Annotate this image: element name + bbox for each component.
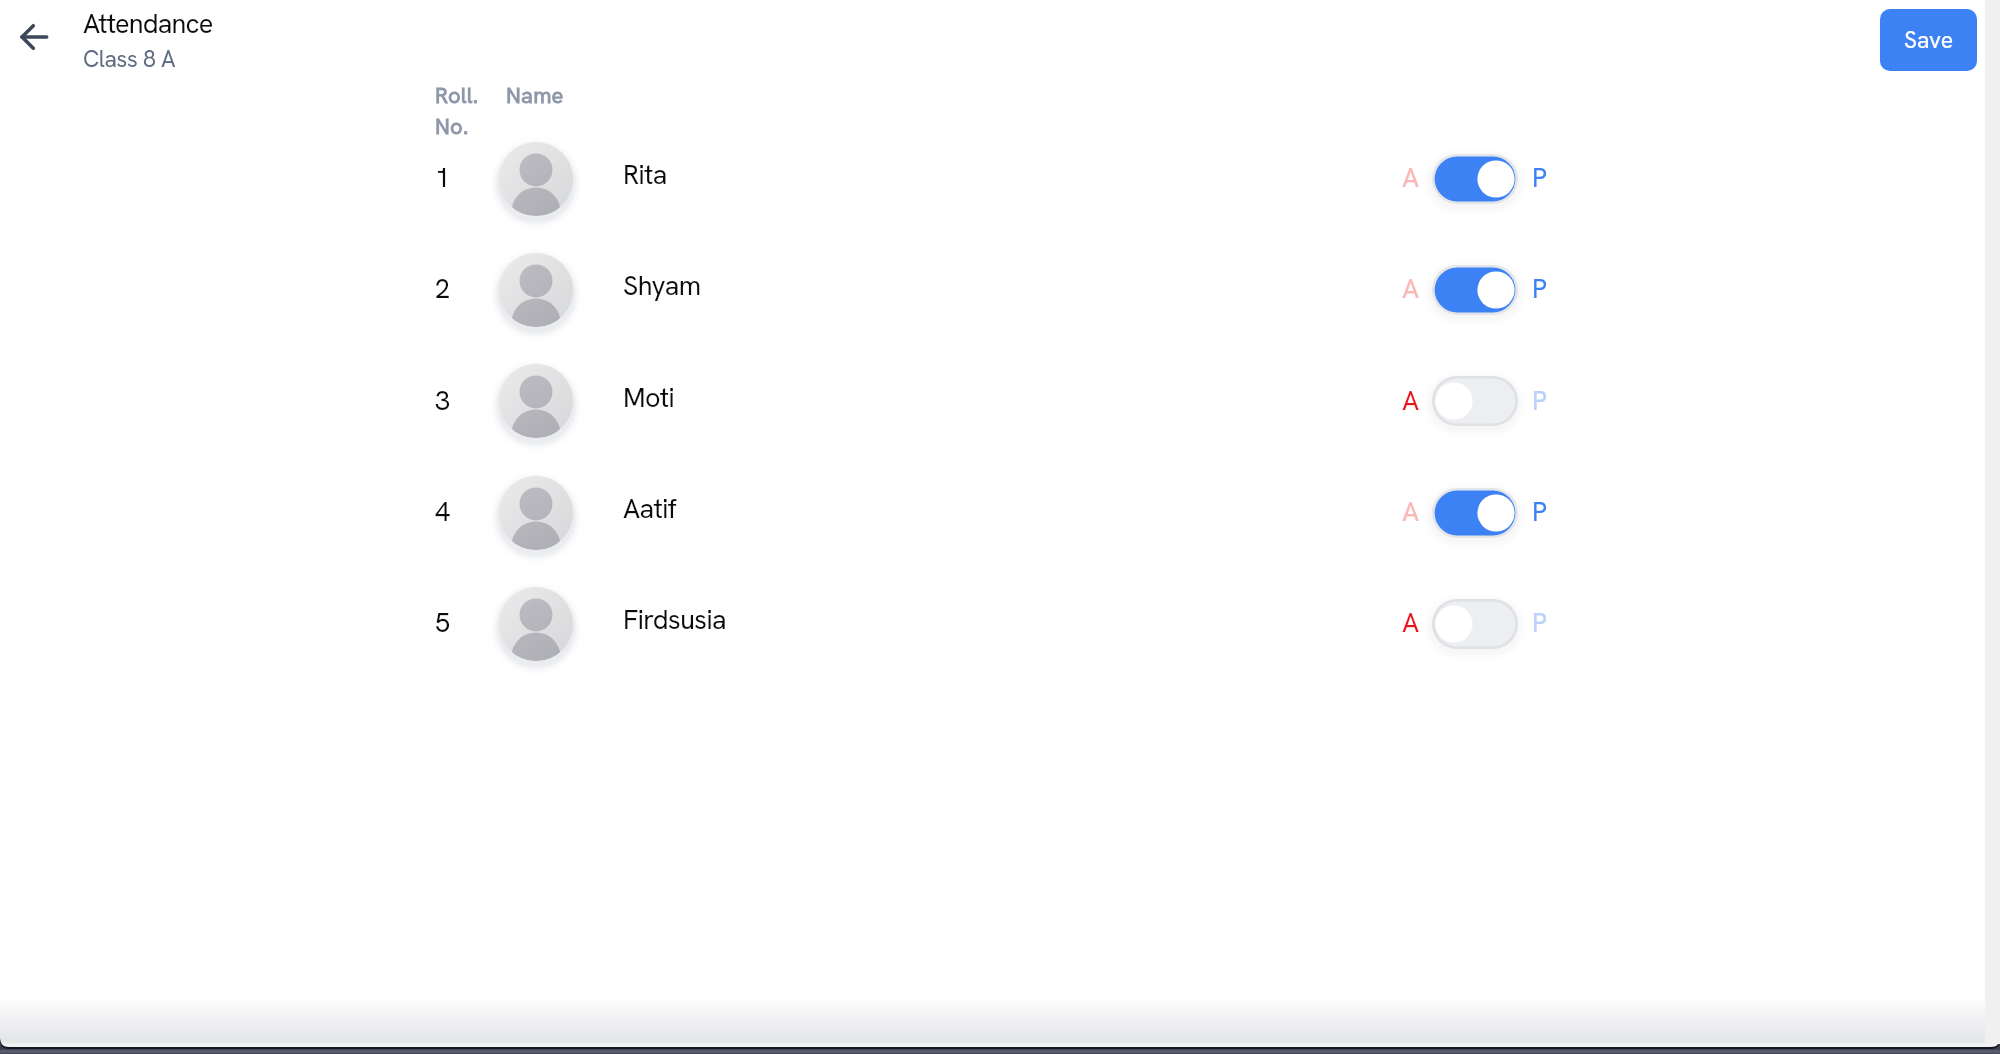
staticText: A <box>1402 160 1420 195</box>
staticText: 1 <box>435 160 451 195</box>
staticText: Rita <box>623 157 667 192</box>
staticText: P <box>1532 160 1547 195</box>
staticText: 5 <box>435 605 451 640</box>
staticText: P <box>1532 494 1547 529</box>
staticText: Save <box>1904 25 1954 55</box>
button[interactable]: Mark Shyam absent <box>1432 265 1518 315</box>
staticText: P <box>1532 271 1547 306</box>
staticText: Aatif <box>623 491 677 526</box>
staticText: A <box>1402 605 1420 640</box>
staticText: 3 <box>435 383 451 418</box>
staticText: A <box>1402 383 1420 418</box>
staticText: P <box>1532 605 1547 640</box>
staticText: Moti <box>623 380 674 415</box>
staticText: Shyam <box>623 268 701 303</box>
button[interactable]: Mark Aatif absent <box>1432 488 1518 538</box>
staticText: Class 8 A <box>83 44 176 74</box>
staticText: Attendance <box>83 6 213 41</box>
staticText: Name <box>506 81 564 110</box>
button[interactable]: Student 4 Aatif <box>420 465 1380 561</box>
staticText: Roll. <box>435 81 479 110</box>
button[interactable]: Student 3 Moti <box>420 353 1380 449</box>
button[interactable]: Mark Moti present <box>1432 376 1518 426</box>
staticText: 2 <box>435 271 451 306</box>
staticText: Firdsusia <box>623 602 726 637</box>
button[interactable]: Mark Firdsusia present <box>1432 599 1518 649</box>
button[interactable]: Back <box>13 17 53 57</box>
button[interactable]: Save <box>1880 9 1977 71</box>
button[interactable]: Student 2 Shyam <box>420 242 1380 338</box>
button[interactable]: Mark Rita absent <box>1432 154 1518 204</box>
staticText: A <box>1402 271 1420 306</box>
button[interactable]: Student 5 Firdsusia <box>420 576 1380 672</box>
staticText: P <box>1532 383 1547 418</box>
staticText: No. <box>435 112 469 141</box>
button[interactable]: Student 1 Rita <box>420 131 1380 227</box>
staticText: A <box>1402 494 1420 529</box>
staticText: 4 <box>435 494 451 529</box>
